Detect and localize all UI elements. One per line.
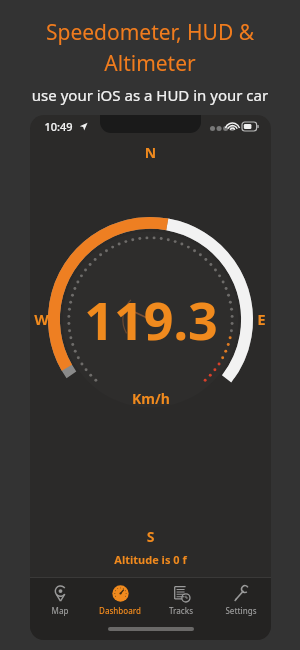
staticText: Altimeter — [0, 49, 300, 78]
staticText: 10:49 — [44, 119, 73, 134]
other: Settings — [233, 585, 250, 602]
button[interactable]: Dashboard — [90, 583, 150, 618]
staticText: N — [30, 143, 271, 162]
staticText: use your iOS as a HUD in your car — [0, 85, 300, 105]
other: Dashboard — [112, 585, 129, 602]
other: Tracks — [173, 585, 190, 602]
staticText: 119.3 — [84, 284, 218, 355]
staticText: Km/h — [132, 389, 170, 408]
staticText: E — [257, 309, 266, 329]
staticText: Tracks — [151, 605, 211, 616]
staticText: Map — [30, 605, 90, 616]
other: Map — [52, 585, 69, 602]
staticText: Speedometer, HUD & — [0, 18, 300, 47]
staticText: Dashboard — [90, 605, 150, 616]
staticText: W — [34, 309, 49, 329]
staticText: S — [30, 527, 271, 546]
button[interactable]: Tracks — [151, 583, 211, 618]
staticText: Settings — [211, 605, 271, 616]
staticText: Altitude is 0 f — [30, 552, 271, 567]
button[interactable]: Settings — [211, 583, 271, 618]
button[interactable]: Map — [30, 583, 90, 618]
